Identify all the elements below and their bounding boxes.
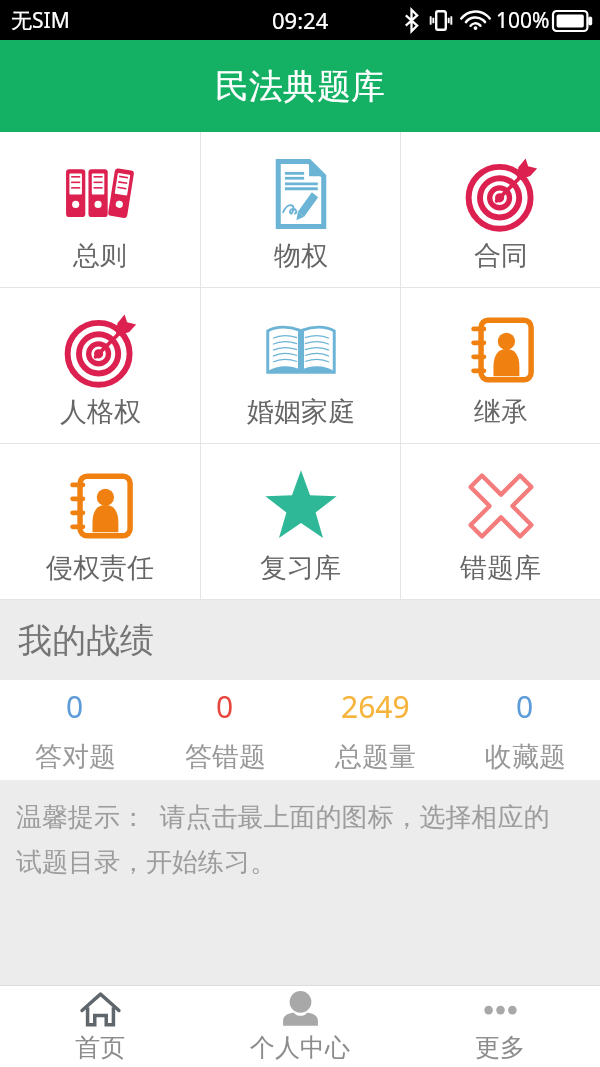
staticText: 婚姻家庭 (247, 395, 355, 429)
staticText: 答错题 (185, 740, 266, 774)
staticText: 民法典题库 (215, 65, 385, 108)
staticText: 人格权 (60, 395, 141, 429)
staticText: 100% (496, 6, 550, 35)
button[interactable]: 错题库 (401, 444, 600, 599)
button[interactable]: 继承 (401, 288, 600, 443)
button[interactable]: 0 (0, 686, 150, 780)
staticText: 错题库 (460, 551, 541, 585)
button[interactable]: 人格权 (0, 288, 200, 443)
button[interactable]: 合同 (401, 132, 600, 287)
staticText: 0 (516, 686, 534, 727)
button[interactable]: 复习库 (201, 444, 400, 599)
staticText: 2649 (341, 686, 410, 727)
staticText: 首页 (75, 1032, 125, 1063)
button[interactable]: 2649 (300, 686, 450, 780)
staticText: 继承 (474, 395, 528, 429)
staticText: 个人中心 (250, 1032, 350, 1063)
staticText: 0 (216, 686, 234, 727)
button[interactable]: 总则 (0, 132, 200, 287)
staticText: 物权 (274, 239, 328, 273)
staticText: 总则 (73, 239, 127, 273)
button[interactable]: 更多 (400, 986, 600, 1067)
staticText: 温馨提示： 请点击最上面的图标，选择相应的 试题目录，开始练习。 (16, 798, 550, 879)
staticText: 收藏题 (485, 740, 566, 774)
button[interactable]: 婚姻家庭 (201, 288, 400, 443)
staticText: 侵权责任 (46, 551, 154, 585)
staticText: 总题量 (335, 740, 416, 774)
staticText: 0 (66, 686, 84, 727)
staticText: 答对题 (35, 740, 116, 774)
staticText: 更多 (475, 1032, 525, 1063)
button[interactable]: 侵权责任 (0, 444, 200, 599)
staticText: 我的战绩 (18, 619, 154, 662)
button[interactable]: 首页 (0, 986, 200, 1067)
button[interactable]: 物权 (201, 132, 400, 287)
button[interactable]: 0 (450, 686, 600, 780)
staticText: 复习库 (260, 551, 341, 585)
staticText: 合同 (474, 239, 528, 273)
staticText: 无SIM (11, 6, 70, 35)
button[interactable]: 个人中心 (200, 986, 400, 1067)
button[interactable]: 0 (150, 686, 300, 780)
staticText: 09:24 (272, 5, 329, 35)
